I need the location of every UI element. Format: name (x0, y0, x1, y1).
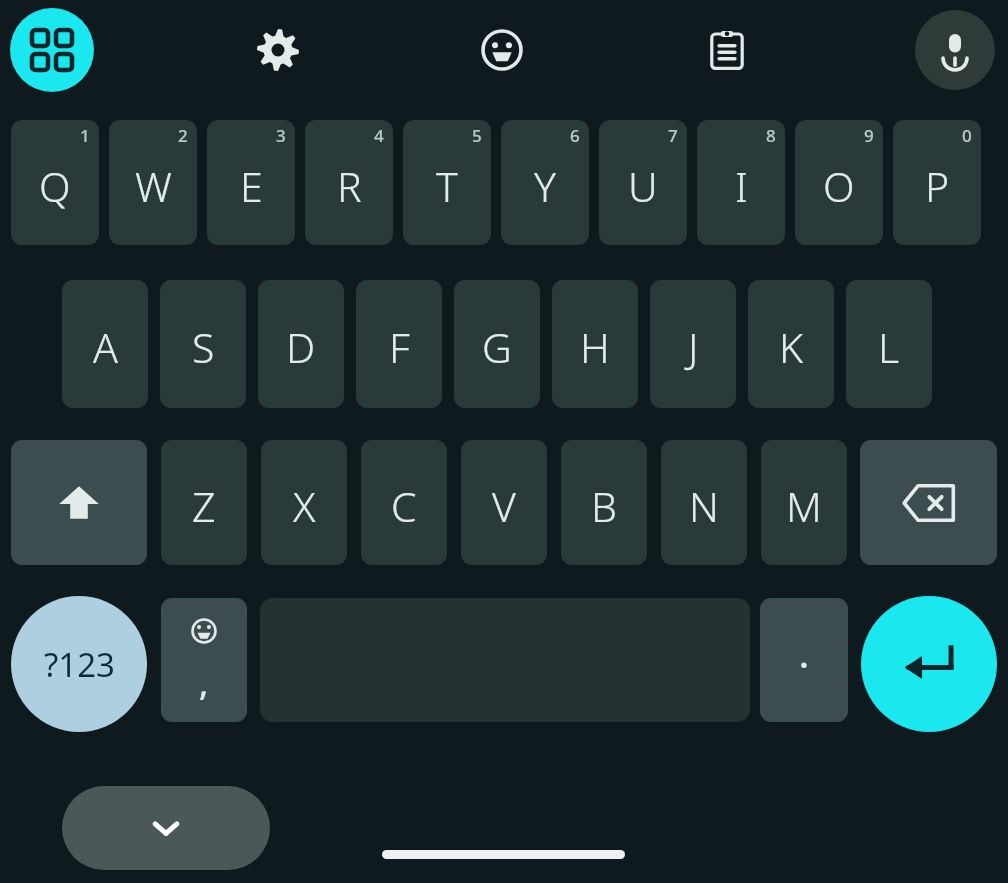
button[interactable]: F (356, 280, 442, 408)
button[interactable]: G (454, 280, 540, 408)
button[interactable]: Y (501, 120, 589, 245)
staticText: 0 (962, 124, 972, 147)
staticText: I (735, 158, 748, 214)
button[interactable]: A (62, 280, 148, 408)
staticText: N (689, 478, 719, 534)
staticText: J (688, 319, 699, 375)
staticText: . (799, 630, 809, 679)
button[interactable]: P (893, 120, 981, 245)
staticText: 6 (570, 124, 580, 147)
button[interactable]: Enter (861, 596, 997, 732)
staticText: C (391, 478, 417, 534)
staticText: 5 (472, 124, 482, 147)
button[interactable]: B (561, 440, 647, 565)
staticText: F (389, 319, 410, 375)
button[interactable]: I (697, 120, 785, 245)
button[interactable]: Emoji (462, 10, 542, 90)
button[interactable]: M (761, 440, 847, 565)
staticText: ?123 (44, 642, 115, 687)
staticText: T (436, 158, 458, 214)
button[interactable]: J (650, 280, 736, 408)
staticText: 8 (766, 124, 776, 147)
button[interactable]: Emoji and comma (161, 598, 247, 722)
staticText: O (823, 158, 855, 214)
staticText: 1 (80, 124, 90, 147)
button[interactable]: W (109, 120, 197, 245)
button[interactable]: L (846, 280, 932, 408)
button[interactable]: Shift (11, 440, 147, 565)
staticText: H (580, 319, 610, 375)
staticText: X (293, 478, 316, 534)
staticText: E (240, 158, 263, 214)
button[interactable]: V (461, 440, 547, 565)
staticText: , (199, 660, 209, 706)
button[interactable]: E (207, 120, 295, 245)
button[interactable]: K (748, 280, 834, 408)
button[interactable]: Q (11, 120, 99, 245)
staticText: B (591, 478, 617, 534)
button[interactable]: Settings (238, 10, 318, 90)
button[interactable]: D (258, 280, 344, 408)
button[interactable]: ?123 (11, 596, 147, 732)
staticText: W (135, 158, 172, 214)
staticText: 7 (668, 124, 678, 147)
staticText: Y (534, 158, 556, 214)
staticText: Z (192, 478, 216, 534)
button[interactable]: Backspace (860, 440, 997, 565)
staticText: P (925, 158, 950, 214)
staticText: 3 (276, 124, 286, 147)
staticText: M (786, 478, 822, 534)
staticText: Q (39, 158, 71, 214)
staticText: A (93, 319, 118, 375)
button[interactable]: Clipboard (687, 10, 767, 90)
staticText: 9 (864, 124, 874, 147)
button[interactable]: S (160, 280, 246, 408)
button[interactable]: R (305, 120, 393, 245)
staticText: G (482, 319, 512, 375)
staticText: 2 (178, 124, 188, 147)
staticText: K (779, 319, 804, 375)
button[interactable]: Z (161, 440, 247, 565)
button[interactable]: Hide keyboard (62, 786, 270, 870)
staticText: U (628, 158, 658, 214)
button[interactable]: U (599, 120, 687, 245)
button[interactable]: Voice input (915, 10, 995, 90)
staticText: V (492, 478, 516, 534)
button[interactable]: H (552, 280, 638, 408)
button[interactable]: T (403, 120, 491, 245)
button[interactable]: X (261, 440, 347, 565)
button[interactable]: N (661, 440, 747, 565)
staticText: 4 (374, 124, 384, 147)
staticText: R (337, 158, 362, 214)
staticText: S (192, 319, 215, 375)
staticText: D (286, 319, 316, 375)
button[interactable]: . (760, 598, 848, 722)
button[interactable]: O (795, 120, 883, 245)
staticText: L (878, 319, 900, 375)
button[interactable]: C (361, 440, 447, 565)
button[interactable]: Apps (10, 8, 94, 92)
